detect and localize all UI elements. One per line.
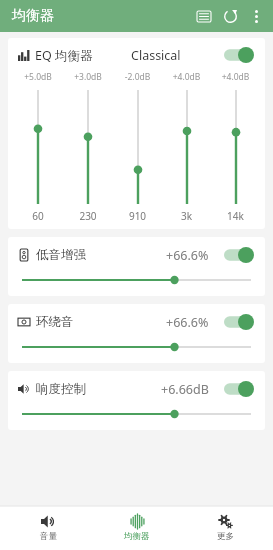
button[interactable]: Toggle bbox=[223, 46, 255, 64]
button[interactable]: 更多 bbox=[185, 506, 265, 550]
button[interactable]: Presets bbox=[191, 3, 217, 29]
staticText: 230 bbox=[63, 209, 113, 223]
staticText: +66.6% bbox=[166, 247, 209, 264]
staticText: 14k bbox=[211, 209, 260, 223]
staticText: 3k bbox=[162, 209, 211, 223]
staticText: +3.0dB bbox=[63, 71, 113, 83]
staticText: +4.0dB bbox=[162, 71, 211, 83]
staticText: 音量 bbox=[40, 531, 57, 542]
button[interactable] bbox=[162, 88, 211, 206]
staticText: 低音增强 bbox=[36, 247, 86, 263]
staticText: 910 bbox=[113, 209, 162, 223]
staticText: +4.0dB bbox=[211, 71, 260, 83]
staticText: 环绕音 bbox=[36, 314, 74, 330]
button[interactable]: Toggle bbox=[223, 380, 255, 398]
button[interactable]: 音量 bbox=[8, 506, 88, 550]
button[interactable] bbox=[13, 88, 63, 206]
button[interactable] bbox=[113, 88, 162, 206]
staticText: 60 bbox=[13, 209, 63, 223]
staticText: 更多 bbox=[217, 531, 234, 542]
button[interactable] bbox=[63, 88, 113, 206]
staticText: EQ 均衡器 bbox=[35, 47, 93, 64]
button[interactable] bbox=[22, 273, 251, 287]
button[interactable] bbox=[22, 407, 251, 421]
staticText: -2.0dB bbox=[113, 71, 162, 83]
button[interactable] bbox=[211, 88, 260, 206]
button[interactable]: Toggle bbox=[223, 313, 255, 331]
staticText: +5.0dB bbox=[13, 71, 63, 83]
staticText: 均衡器 bbox=[124, 531, 150, 542]
staticText: +6.66dB bbox=[161, 381, 209, 398]
staticText: 均衡器 bbox=[12, 7, 54, 25]
button[interactable] bbox=[22, 340, 251, 354]
staticText: 响度控制 bbox=[36, 381, 86, 397]
button[interactable]: Reset bbox=[217, 3, 243, 29]
button[interactable]: More options bbox=[243, 3, 269, 29]
button[interactable]: 均衡器 bbox=[97, 506, 177, 550]
button[interactable]: Toggle bbox=[223, 246, 255, 264]
staticText: Classical bbox=[131, 47, 181, 64]
staticText: +66.6% bbox=[166, 314, 209, 331]
